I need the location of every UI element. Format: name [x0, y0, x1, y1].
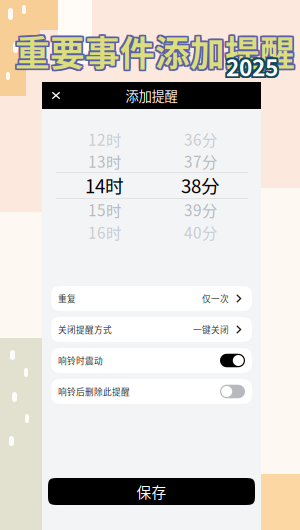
staticText: 36分	[184, 128, 217, 150]
staticText: 重要事件添加提醒	[15, 26, 295, 76]
button[interactable]: 重复	[51, 286, 252, 311]
staticText: 仅一次	[202, 292, 229, 305]
staticText: 响铃时震动	[58, 354, 103, 367]
staticText: 重要事件添加提醒	[13, 26, 293, 76]
staticText: 2025	[228, 52, 280, 85]
staticText: 12时	[88, 128, 121, 150]
staticText: 保存	[136, 481, 166, 502]
staticText: 38分	[181, 171, 220, 198]
staticText: 重复	[58, 292, 76, 305]
button[interactable]: 关闭	[42, 82, 70, 109]
staticText: 39分	[184, 198, 217, 221]
button[interactable]: 响铃时震动	[51, 348, 252, 373]
staticText: 一键关闭	[193, 323, 229, 336]
staticText: 2025	[226, 52, 278, 85]
staticText: 关闭提醒方式	[58, 323, 112, 336]
staticText: 2025	[224, 52, 276, 85]
staticText: 重要事件添加提醒	[13, 24, 293, 75]
staticText: 2025	[224, 48, 276, 81]
button[interactable]: 关闭提醒方式	[51, 317, 252, 342]
staticText: 16时	[88, 221, 121, 243]
staticText: 重要事件添加提醒	[15, 27, 295, 78]
staticText: 重要事件添加提醒	[16, 24, 296, 75]
staticText: 2025	[226, 48, 278, 81]
staticText: 重要事件添加提醒	[15, 24, 295, 75]
staticText: 重要事件添加提醒	[16, 26, 296, 76]
staticText: 重要事件添加提醒	[13, 27, 293, 78]
staticText: 重要事件添加提醒	[16, 27, 296, 78]
staticText: 40分	[184, 221, 217, 243]
button[interactable]: 保存	[48, 478, 255, 505]
staticText: 2025	[228, 50, 280, 83]
staticText: 添加提醒	[125, 86, 177, 105]
staticText: 37分	[184, 150, 217, 172]
staticText: 15时	[88, 198, 121, 221]
button[interactable]: 响铃后删除此提醒	[51, 379, 252, 404]
staticText: 2025	[228, 48, 280, 81]
staticText: 13时	[88, 150, 121, 172]
staticText: 14时	[85, 171, 124, 198]
staticText: 响铃后删除此提醒	[58, 385, 130, 398]
staticText: 2025	[226, 50, 278, 83]
staticText: 2025	[224, 50, 276, 83]
